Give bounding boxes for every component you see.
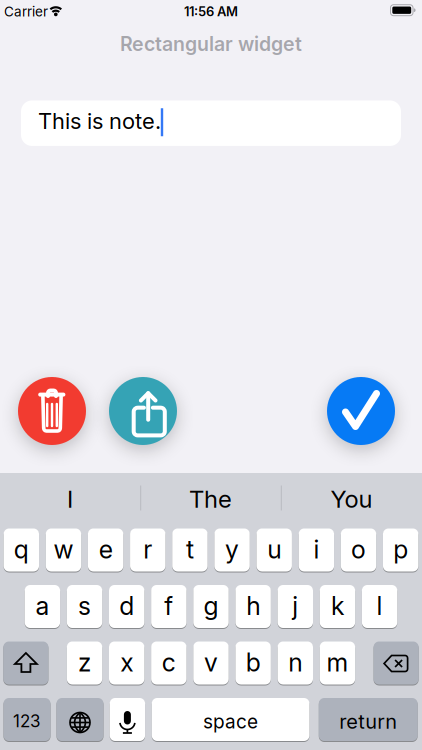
button[interactable]: o — [341, 528, 376, 572]
button[interactable]: p — [383, 528, 418, 572]
button[interactable]: Save note — [327, 377, 395, 445]
staticText: g — [203, 591, 218, 621]
button[interactable]: i — [299, 528, 334, 572]
button[interactable]: Delete note — [18, 377, 86, 445]
staticText: You — [330, 484, 372, 513]
button[interactable]: z — [67, 641, 102, 685]
staticText: space — [203, 710, 258, 733]
button[interactable]: I — [0, 473, 140, 525]
button[interactable]: l — [362, 585, 397, 629]
button[interactable]: space — [152, 698, 309, 742]
staticText: w — [53, 534, 73, 565]
staticText: y — [225, 534, 239, 565]
staticText: The — [189, 484, 232, 513]
button[interactable]: q — [4, 528, 39, 572]
staticText: d — [119, 591, 134, 621]
button[interactable]: This is note. — [21, 100, 401, 146]
button[interactable]: e — [88, 528, 123, 572]
button[interactable]: k — [320, 585, 355, 629]
button[interactable]: u — [256, 528, 292, 572]
staticText: q — [14, 534, 29, 565]
staticText: i — [313, 534, 319, 565]
staticText: v — [204, 647, 218, 678]
button[interactable]: r — [130, 528, 165, 572]
staticText: h — [246, 591, 260, 621]
button[interactable]: c — [151, 641, 186, 685]
staticText: 123 — [13, 711, 41, 731]
button[interactable]: v — [193, 641, 229, 685]
button[interactable]: w — [46, 528, 81, 572]
button[interactable]: j — [278, 585, 313, 629]
button[interactable]: t — [172, 528, 208, 572]
staticText: n — [288, 647, 302, 678]
button[interactable]: Delete — [374, 641, 419, 685]
button[interactable]: a — [25, 585, 60, 629]
button[interactable]: b — [235, 641, 271, 685]
staticText: Carrier — [4, 3, 48, 20]
staticText: k — [331, 591, 344, 621]
button[interactable]: return — [319, 698, 418, 742]
button[interactable]: The — [140, 473, 281, 525]
button[interactable]: Shift — [3, 641, 48, 685]
staticText: I — [67, 484, 73, 513]
button[interactable]: f — [151, 585, 187, 629]
staticText: o — [351, 534, 366, 565]
staticText: l — [377, 591, 383, 621]
button[interactable]: s — [67, 585, 102, 629]
staticText: f — [164, 591, 173, 621]
button[interactable]: n — [278, 641, 313, 685]
staticText: e — [99, 534, 113, 565]
staticText: return — [339, 709, 397, 734]
button[interactable]: Dictate — [110, 698, 145, 742]
button[interactable]: 123 — [3, 698, 50, 742]
staticText: u — [267, 534, 281, 565]
staticText: a — [35, 591, 49, 621]
button[interactable]: Share note — [109, 377, 177, 445]
button[interactable]: y — [214, 528, 250, 572]
staticText: 11:56 AM — [184, 4, 238, 19]
button[interactable]: d — [109, 585, 144, 629]
staticText: j — [292, 591, 298, 621]
staticText: t — [186, 534, 194, 565]
staticText: c — [162, 647, 176, 678]
button[interactable]: x — [109, 641, 144, 685]
staticText: s — [78, 591, 91, 621]
staticText: z — [78, 647, 91, 678]
button[interactable]: g — [193, 585, 229, 629]
button[interactable]: m — [320, 641, 355, 685]
staticText: r — [143, 534, 152, 565]
staticText: x — [120, 647, 133, 678]
staticText: b — [246, 647, 261, 678]
staticText: This is note. — [38, 108, 161, 134]
staticText: m — [326, 647, 348, 678]
staticText: p — [393, 534, 408, 565]
button[interactable]: You — [281, 473, 422, 525]
button[interactable]: h — [235, 585, 271, 629]
staticText: Rectangular widget — [120, 32, 302, 56]
button[interactable]: Next keyboard — [56, 698, 103, 742]
